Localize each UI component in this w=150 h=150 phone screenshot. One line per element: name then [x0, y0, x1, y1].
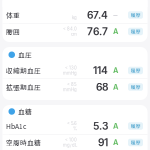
button[interactable]: 空腹時血糖 — [2, 134, 147, 150]
staticText: < 5.6 — [67, 121, 77, 126]
staticText: ‒ — [113, 10, 118, 19]
staticText: 履歴 — [130, 139, 140, 146]
staticText: 履歴 — [130, 28, 140, 35]
staticText: 履歴 — [130, 67, 140, 74]
staticText: A — [113, 121, 118, 130]
staticText: 67.4 — [87, 9, 108, 21]
staticText: < 84.0 — [63, 26, 77, 31]
staticText: cm — [71, 31, 77, 37]
staticText: mg/dL — [63, 142, 77, 148]
staticText: 114 — [93, 64, 108, 77]
staticText: 91 — [98, 136, 108, 149]
staticText: kg — [72, 15, 77, 20]
staticText: 76.7 — [87, 25, 108, 38]
button[interactable]: 拡張期血圧 — [2, 79, 147, 95]
staticText: 空腹時血糖 — [6, 138, 41, 147]
staticText: A — [113, 27, 118, 36]
staticText: < 85 — [67, 82, 77, 87]
staticText: A — [113, 82, 118, 91]
staticText: 拡張期血圧 — [6, 82, 41, 92]
staticText: 血糖 — [18, 107, 32, 116]
staticText: 腰囲 — [6, 27, 20, 36]
staticText: A — [113, 66, 118, 75]
button[interactable]: 体重 — [2, 7, 147, 23]
staticText: 68 — [96, 81, 108, 93]
staticText: 履歴 — [130, 11, 140, 19]
button[interactable]: 収縮期血圧 — [2, 62, 147, 78]
staticText: < 100 — [65, 137, 77, 142]
staticText: 履歴 — [130, 122, 140, 130]
staticText: mmHg — [63, 70, 77, 76]
staticText: 履歴 — [130, 83, 140, 91]
button[interactable]: HbA1c — [2, 118, 147, 134]
staticText: < 130 — [65, 65, 77, 70]
staticText: 収縮期血圧 — [6, 66, 41, 75]
staticText: % — [73, 126, 77, 131]
staticText: 血圧 — [18, 50, 32, 60]
staticText: 5.3 — [93, 120, 108, 132]
staticText: HbA1c — [6, 121, 26, 131]
staticText: mmHg — [63, 87, 77, 92]
staticText: 体重 — [6, 10, 20, 20]
staticText: A — [113, 138, 118, 147]
button[interactable]: 腰囲 — [2, 23, 147, 39]
